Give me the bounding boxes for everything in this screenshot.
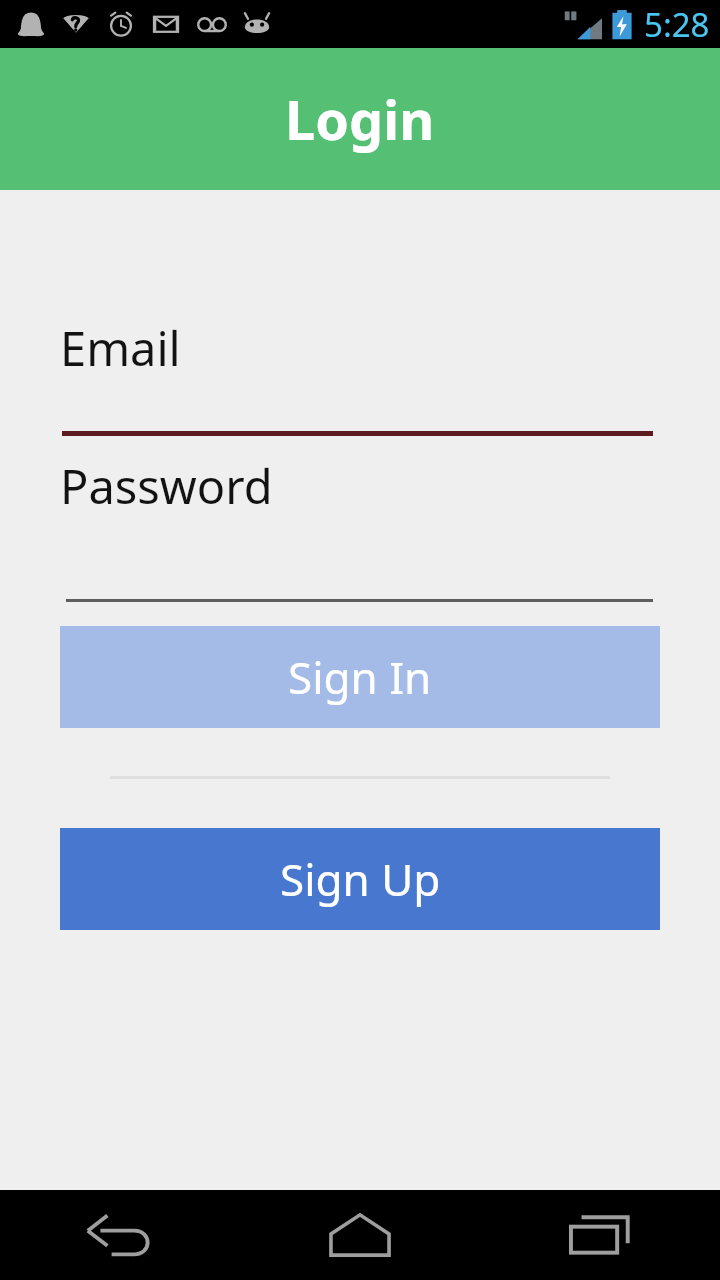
staticText: 5:28 <box>644 2 710 47</box>
button[interactable]: Sign In <box>60 626 660 728</box>
staticText: Password <box>60 454 273 518</box>
staticText: Email <box>60 316 181 380</box>
button[interactable]: Home <box>240 1190 480 1280</box>
button[interactable]: Email <box>0 308 720 446</box>
button[interactable]: Recent apps <box>480 1190 720 1280</box>
staticText: Sign In <box>288 647 432 707</box>
button[interactable]: Back <box>0 1190 240 1280</box>
staticText: Sign Up <box>280 849 441 909</box>
button[interactable]: Password <box>0 446 720 614</box>
button[interactable]: Sign Up <box>60 828 660 930</box>
staticText: Login <box>285 82 435 156</box>
